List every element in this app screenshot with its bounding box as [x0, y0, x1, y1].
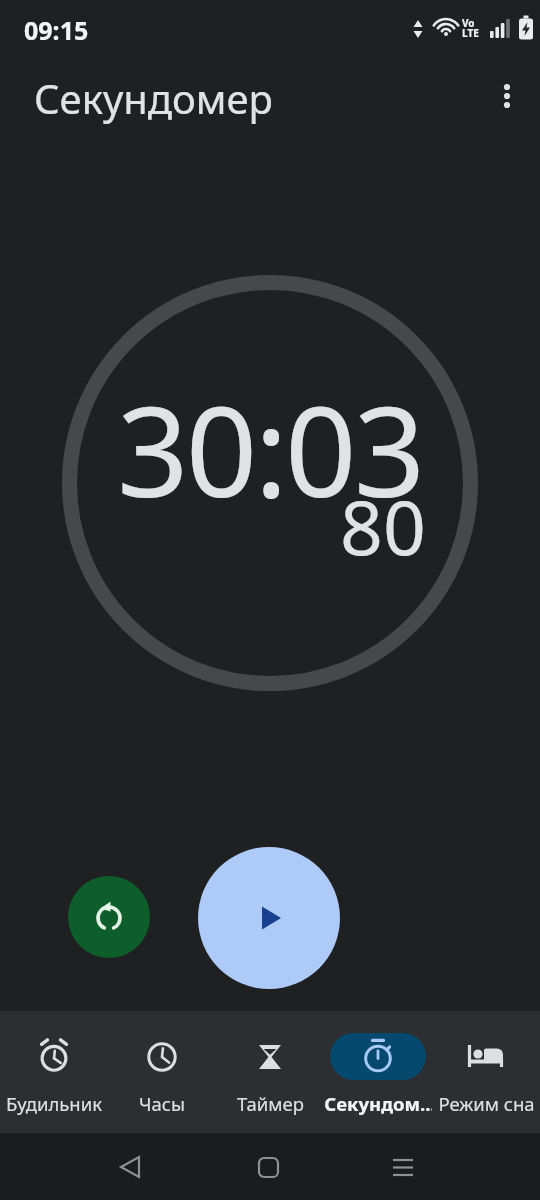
staticText: 80 [340, 475, 426, 577]
staticText: Секундомер [34, 71, 273, 125]
button[interactable]: Часы [108, 1011, 216, 1133]
staticText: 09:15 [24, 13, 89, 47]
staticText: Режим сна [438, 1091, 535, 1116]
button[interactable]: Режим сна [432, 1011, 540, 1133]
staticText: Секундом… [324, 1091, 432, 1116]
staticText: Часы [139, 1091, 185, 1116]
button[interactable]: Будильник [0, 1011, 108, 1133]
staticText: 30:03 [117, 363, 423, 533]
button[interactable] [198, 847, 340, 989]
button[interactable]: Таймер [216, 1011, 324, 1133]
staticText: Будильник [6, 1091, 102, 1116]
staticText: Vo LTE [462, 16, 479, 40]
button[interactable]: Секундом… [324, 1011, 432, 1133]
button[interactable] [68, 876, 150, 958]
staticText: Таймер [237, 1091, 304, 1116]
button[interactable] [495, 84, 519, 108]
